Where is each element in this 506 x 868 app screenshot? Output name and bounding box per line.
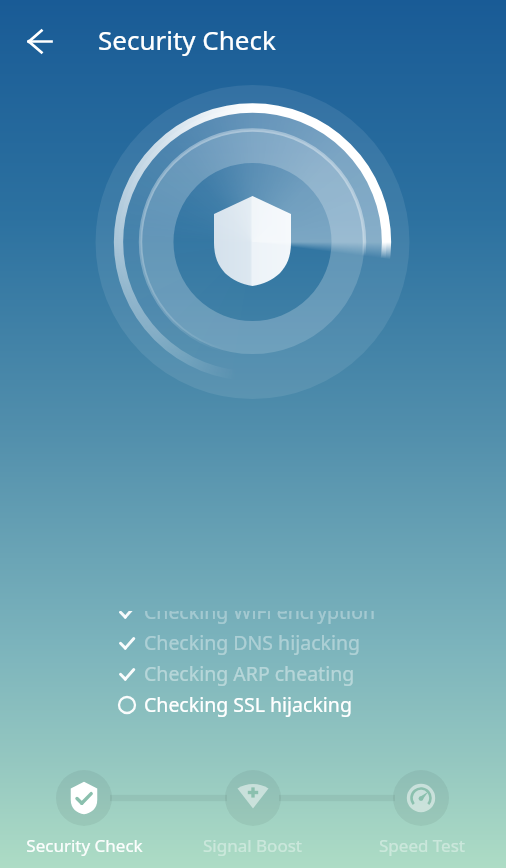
button[interactable]: Checking DNS hijacking (0, 627, 506, 658)
staticText: Speed Test (379, 834, 465, 857)
button[interactable]: Speed Test (337, 834, 506, 868)
staticText: Checking ARP cheating (144, 660, 355, 687)
button[interactable]: Checking SSL hijacking (0, 689, 506, 720)
staticText: Checking WiFi encryption (144, 611, 375, 625)
button[interactable]: Checking ARP cheating (0, 658, 506, 689)
button[interactable]: Checking WiFi encryption (0, 611, 506, 627)
staticText: Security Check (98, 22, 276, 57)
staticText: Security Check (26, 834, 143, 857)
staticText: Signal Boost (203, 834, 302, 857)
staticText: Checking SSL hijacking (144, 691, 352, 718)
button[interactable]: Back (16, 15, 64, 63)
staticText: Checking DNS hijacking (144, 629, 361, 656)
button[interactable]: Signal Boost (168, 834, 337, 868)
button[interactable]: Security Check (0, 834, 168, 868)
